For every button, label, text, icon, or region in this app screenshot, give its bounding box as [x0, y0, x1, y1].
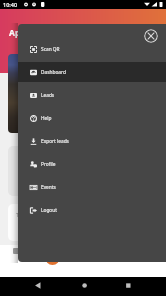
button[interactable]: Dashboard	[18, 62, 166, 82]
staticText: Logout	[41, 207, 57, 214]
button[interactable]: Help	[18, 108, 166, 128]
staticText: 10:40	[3, 1, 18, 8]
button[interactable]: Events	[18, 177, 166, 197]
staticText: App	[9, 27, 26, 39]
button[interactable]: Home	[56, 277, 111, 296]
staticText: Events	[41, 184, 56, 191]
button[interactable]: Profile	[18, 154, 166, 174]
staticText: Scan QR	[41, 46, 60, 53]
staticText: Dashboard	[41, 69, 66, 76]
staticText: Leads	[41, 92, 55, 99]
staticText: Help	[41, 115, 52, 122]
button[interactable]: Close menu	[144, 29, 158, 43]
button[interactable]: Export leads	[18, 131, 166, 151]
button[interactable]: Back	[0, 277, 56, 296]
button[interactable]: Leads	[18, 85, 166, 105]
staticText: T	[16, 212, 19, 219]
staticText: Export leads	[41, 138, 69, 145]
button[interactable]: Scan QR	[18, 39, 166, 59]
staticText: Profile	[41, 161, 56, 168]
button[interactable]: Recent apps	[111, 277, 166, 296]
button[interactable]: Logout	[18, 200, 166, 220]
button[interactable]: Add	[45, 250, 60, 265]
